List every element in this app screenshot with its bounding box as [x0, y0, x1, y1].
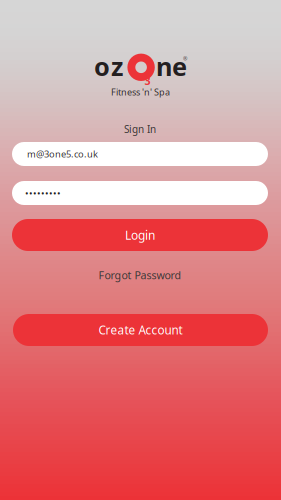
staticText: ••••••••• — [25, 187, 61, 199]
button[interactable]: ••••••••• — [12, 181, 268, 205]
staticText: Forgot Password — [98, 268, 181, 282]
button[interactable]: Create Account — [13, 314, 268, 346]
staticText: o — [94, 49, 110, 83]
staticText: Sign In — [124, 122, 156, 136]
staticText: Fitness 'n' Spa — [111, 86, 170, 98]
staticText: ® — [183, 55, 187, 62]
staticText: 3 — [145, 74, 151, 88]
staticText: Login — [125, 227, 155, 243]
button[interactable]: Login — [12, 219, 268, 251]
staticText: n — [156, 49, 172, 83]
staticText: m@3one5.co.uk — [27, 148, 98, 160]
staticText: z — [111, 49, 123, 83]
staticText: Create Account — [98, 322, 182, 338]
button[interactable]: m@3one5.co.uk — [12, 142, 268, 166]
button[interactable]: Forgot Password — [80, 267, 200, 283]
staticText: e — [172, 49, 187, 83]
